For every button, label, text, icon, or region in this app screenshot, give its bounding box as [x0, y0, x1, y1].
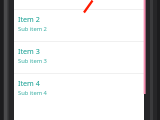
staticText: Sub item 2 [18, 25, 47, 33]
other: Annotation mark [0, 0, 160, 120]
staticText: Item 3 [18, 46, 40, 56]
button[interactable]: Item 2 [14, 10, 144, 41]
staticText: Sub item 4 [18, 89, 47, 97]
button[interactable]: Item 4 [14, 74, 144, 98]
staticText: Item 4 [18, 78, 40, 88]
other: Scroll position [0, 0, 160, 120]
staticText: Item 2 [18, 14, 40, 24]
staticText: Sub item 3 [18, 57, 47, 65]
button[interactable]: Item 1 [14, 0, 144, 9]
button[interactable]: Item 3 [14, 42, 144, 73]
